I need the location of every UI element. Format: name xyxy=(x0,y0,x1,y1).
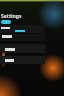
button[interactable]: Settings xyxy=(1,13,22,20)
button[interactable] xyxy=(0,56,45,64)
button[interactable] xyxy=(0,44,45,53)
button[interactable] xyxy=(1,20,11,24)
button[interactable] xyxy=(0,34,45,41)
button[interactable] xyxy=(0,25,45,33)
staticText: Settings xyxy=(1,13,22,20)
